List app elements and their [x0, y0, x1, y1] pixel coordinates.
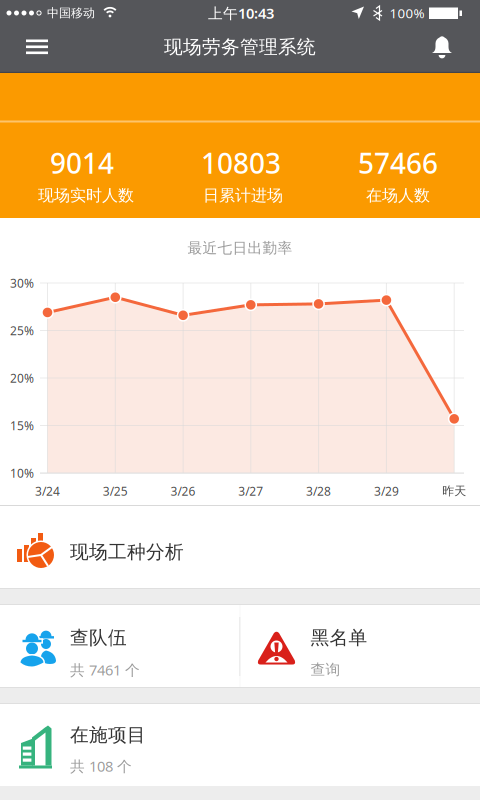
staticText: 3/26 — [171, 483, 196, 499]
staticText: 在场人数 — [366, 186, 430, 205]
staticText: 10% — [10, 465, 34, 481]
staticText: 3/28 — [306, 483, 331, 499]
staticText: 25% — [10, 322, 34, 338]
staticText: 共 108 个 — [70, 756, 132, 776]
staticText: 9014 — [50, 144, 114, 182]
staticText: 查询 — [310, 661, 340, 679]
staticText: 现场工种分析 — [70, 540, 184, 563]
staticText: 57466 — [358, 144, 438, 182]
button[interactable]: 在施项目 — [0, 704, 480, 786]
staticText: 100% — [389, 4, 424, 22]
button[interactable]: 查队伍 — [0, 605, 239, 687]
staticText: 日累计进场 — [203, 186, 283, 205]
staticText: 3/25 — [103, 483, 128, 499]
staticText: 3/24 — [35, 483, 60, 499]
staticText: 昨天 — [442, 484, 466, 498]
button[interactable]: 菜单 — [26, 34, 48, 58]
staticText: 3/27 — [238, 483, 263, 499]
staticText: 现场劳务管理系统 — [164, 35, 316, 58]
staticText: 上午10:43 — [208, 3, 274, 23]
staticText: 黑名单 — [310, 626, 367, 649]
staticText: 30% — [10, 275, 34, 291]
staticText: 最近七日出勤率 — [187, 239, 292, 257]
staticText: 10803 — [201, 144, 281, 182]
staticText: 3/29 — [374, 483, 399, 499]
staticText: 在施项目 — [70, 723, 146, 746]
button[interactable]: 通知 — [431, 35, 453, 59]
staticText: 共 7461 个 — [70, 660, 140, 679]
staticText: 20% — [10, 370, 34, 386]
button[interactable]: 现场工种分析 — [0, 506, 480, 588]
staticText: 15% — [10, 417, 34, 433]
staticText: 现场实时人数 — [38, 186, 134, 205]
staticText: 查队伍 — [70, 626, 127, 649]
staticText: 中国移动 — [47, 6, 95, 20]
button[interactable]: 黑名单 — [240, 605, 480, 687]
